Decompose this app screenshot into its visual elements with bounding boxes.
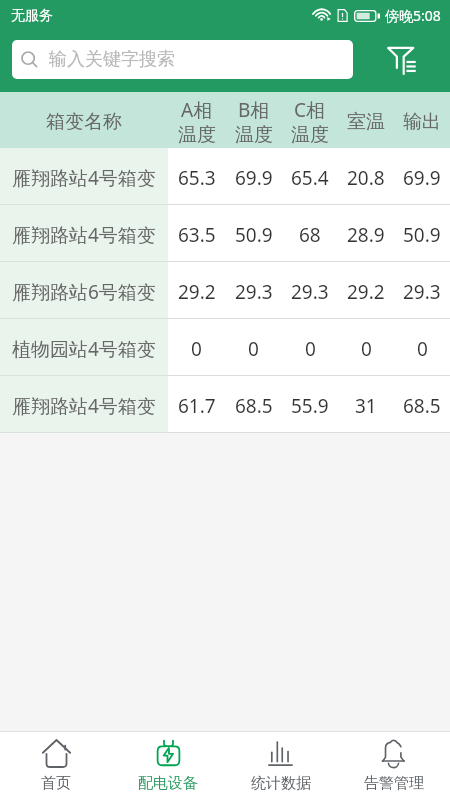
staticText: 0 (361, 336, 372, 362)
staticText: 69.9 (403, 165, 441, 191)
staticText: 68.5 (235, 393, 273, 419)
staticText: 傍晚5:08 (385, 6, 441, 25)
staticText: 20.8 (347, 165, 385, 191)
staticText: 室温 (347, 110, 385, 134)
button[interactable]: Filter (353, 31, 450, 88)
staticText: 55.9 (291, 393, 329, 419)
staticText: 65.3 (178, 165, 216, 191)
staticText: 29.2 (347, 279, 385, 305)
staticText: 统计数据 (251, 774, 311, 793)
staticText: 29.3 (235, 279, 273, 305)
staticText: 29.3 (403, 279, 441, 305)
staticText: 无服务 (11, 7, 53, 25)
staticText: 告警管理 (364, 774, 424, 793)
staticText: 雁翔路站4号箱变 (12, 165, 156, 191)
staticText: 温度 (291, 123, 329, 147)
button[interactable]: 统计数据 (224, 732, 337, 800)
staticText: 65.4 (291, 165, 329, 191)
staticText: 雁翔路站4号箱变 (12, 393, 156, 419)
staticText: 雁翔路站4号箱变 (12, 222, 156, 248)
staticText: 29.2 (178, 279, 216, 305)
staticText: 68.5 (403, 393, 441, 419)
button[interactable]: 首页 (0, 732, 112, 800)
staticText: 61.7 (178, 393, 216, 419)
staticText: 配电设备 (138, 774, 198, 793)
staticText: 0 (248, 336, 259, 362)
staticText: 63.5 (178, 222, 216, 248)
button[interactable]: 配电设备 (112, 732, 224, 800)
staticText: A相 (181, 97, 213, 123)
staticText: 输入关键字搜索 (49, 48, 175, 71)
staticText: 50.9 (403, 222, 441, 248)
staticText: 温度 (235, 123, 273, 147)
staticText: 0 (305, 336, 316, 362)
staticText: 0 (191, 336, 202, 362)
staticText: 50.9 (235, 222, 273, 248)
staticText: 69.9 (235, 165, 273, 191)
staticText: 31 (355, 393, 377, 419)
staticText: 首页 (41, 774, 71, 793)
button[interactable]: 输入关键字搜索 (12, 40, 353, 79)
staticText: 温度 (178, 123, 216, 147)
staticText: 箱变名称 (46, 110, 122, 134)
button[interactable]: 告警管理 (337, 732, 450, 800)
staticText: 68 (299, 222, 321, 248)
staticText: 植物园站4号箱变 (12, 336, 156, 362)
staticText: 28.9 (347, 222, 385, 248)
staticText: 输出 (403, 110, 441, 134)
staticText: 雁翔路站6号箱变 (12, 279, 156, 305)
staticText: 0 (417, 336, 428, 362)
staticText: B相 (238, 97, 270, 123)
staticText: C相 (294, 97, 326, 123)
staticText: 29.3 (291, 279, 329, 305)
